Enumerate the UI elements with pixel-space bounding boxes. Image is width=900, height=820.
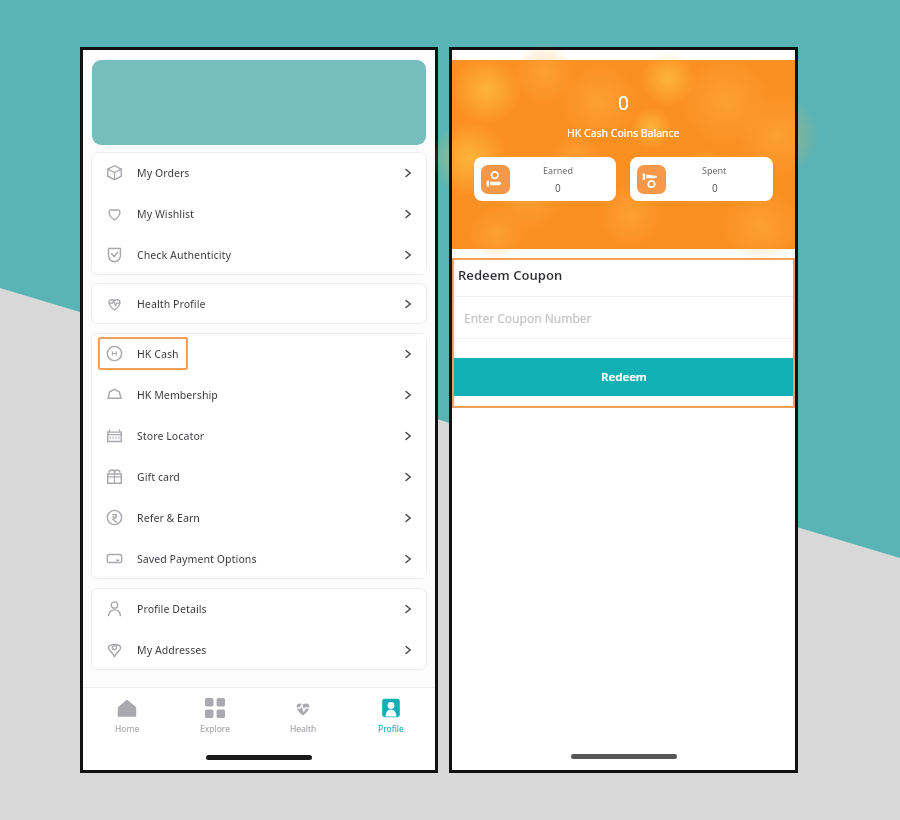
staticText: Home (115, 723, 140, 735)
staticText: 0 (555, 181, 561, 195)
staticText: Check Authenticity (137, 248, 232, 262)
button[interactable]: Profile (347, 688, 435, 744)
staticText: HK Cash Coins Balance (567, 126, 680, 140)
button[interactable]: Explore (171, 688, 259, 744)
staticText: Health (290, 723, 317, 735)
staticText: HK Membership (137, 388, 218, 402)
staticText: Spent (702, 164, 727, 176)
staticText: Saved Payment Options (137, 552, 257, 566)
button[interactable]: Store Locator (91, 415, 427, 456)
button[interactable]: Home (83, 688, 171, 744)
button[interactable]: My Addresses (91, 629, 427, 670)
staticText: My Wishlist (137, 207, 195, 221)
button[interactable]: Check Authenticity (91, 234, 427, 275)
button[interactable]: Enter Coupon Number (452, 296, 795, 339)
button[interactable]: Saved Payment Options (91, 538, 427, 579)
button[interactable]: HK Membership (91, 374, 427, 415)
staticText: My Addresses (137, 643, 207, 657)
button[interactable]: Health (259, 688, 347, 744)
staticText: Profile (378, 723, 404, 735)
staticText: HK Cash (137, 347, 179, 361)
button[interactable]: Gift card (91, 456, 427, 497)
button[interactable]: Health Profile (91, 283, 427, 324)
button[interactable]: HK Cash (91, 333, 427, 374)
staticText: Refer & Earn (137, 511, 200, 525)
button[interactable]: My Wishlist (91, 193, 427, 234)
staticText: My Orders (137, 166, 190, 180)
button[interactable]: My Orders (91, 152, 427, 193)
staticText: 0 (712, 181, 718, 195)
staticText: Enter Coupon Number (464, 310, 592, 326)
staticText: Redeem (601, 369, 647, 385)
staticText: Explore (200, 723, 230, 735)
button[interactable]: Spent (630, 157, 773, 201)
button[interactable] (92, 60, 426, 145)
staticText: Health Profile (137, 297, 206, 311)
staticText: Store Locator (137, 429, 205, 443)
button[interactable]: Redeem (452, 358, 795, 396)
staticText: Redeem Coupon (458, 266, 563, 284)
button[interactable]: Refer & Earn (91, 497, 427, 538)
button[interactable]: Profile Details (91, 588, 427, 629)
staticText: Profile Details (137, 602, 207, 616)
staticText: 0 (618, 90, 629, 116)
button[interactable]: Earned (474, 157, 616, 201)
staticText: Gift card (137, 470, 180, 484)
staticText: Earned (543, 164, 573, 176)
